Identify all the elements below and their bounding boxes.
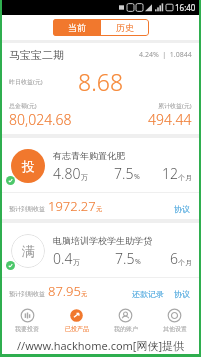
staticText: 万: [73, 258, 80, 267]
staticText: 7.5: [114, 164, 134, 183]
staticText: 6: [170, 249, 178, 268]
staticText: 昨日收益(元): [9, 78, 43, 86]
staticText: 个月: [178, 173, 192, 182]
staticText: 当前: [68, 22, 86, 33]
staticText: 协议: [174, 204, 190, 214]
button[interactable]: 还款记录: [130, 288, 166, 300]
staticText: 494.44: [148, 110, 192, 129]
staticText: 累计收益(元): [158, 102, 192, 110]
button[interactable]: 满: [2, 223, 199, 304]
staticText: 7.5: [115, 249, 135, 268]
staticText: 4.80: [53, 164, 81, 183]
staticText: 协议: [174, 289, 190, 299]
staticText: 元: [96, 205, 102, 213]
staticText: 电脑培训学校学生助学贷: [53, 235, 152, 246]
staticText: 4.24% | 1.0844: [139, 50, 192, 60]
button[interactable]: 已投产品: [52, 304, 101, 336]
staticText: 8.68: [78, 66, 124, 97]
button[interactable]: 协议: [172, 288, 192, 300]
button[interactable]: 我要投资: [2, 304, 52, 336]
staticText: 预计到期收益: [9, 205, 45, 213]
staticText: %: [135, 257, 141, 267]
staticText: 80,024.68: [9, 110, 72, 129]
staticText: 预计到期收益: [9, 290, 45, 298]
staticText: 万: [81, 173, 88, 182]
staticText: 总金额(元): [9, 102, 37, 110]
staticText: 投: [22, 158, 35, 174]
button[interactable]: 其他设置: [150, 304, 199, 336]
staticText: 12: [162, 164, 178, 183]
button[interactable]: 协议: [172, 203, 192, 215]
staticText: 我要投资: [15, 325, 39, 333]
staticText: 1972.27: [48, 197, 96, 215]
button[interactable]: 我的账户: [101, 304, 150, 336]
staticText: 我的账户: [114, 325, 138, 333]
staticText: 历史: [116, 22, 134, 33]
staticText: 马宝宝二期: [9, 48, 64, 62]
staticText: 16:40: [175, 2, 196, 13]
staticText: 0.4: [53, 249, 73, 268]
staticText: 有志青年购置化肥: [53, 150, 125, 161]
staticText: 其他设置: [163, 325, 187, 333]
staticText: 87.95: [48, 282, 81, 300]
button[interactable]: 当前: [53, 19, 101, 36]
staticText: 满: [22, 243, 35, 259]
staticText: 还款记录: [132, 289, 164, 299]
button[interactable]: 投: [2, 138, 199, 219]
button[interactable]: 马宝宝二期: [2, 43, 199, 134]
staticText: //www.hackhome.com[网侠]提供: [17, 338, 185, 353]
button[interactable]: 历史: [101, 19, 149, 36]
staticText: 已投产品: [65, 325, 89, 333]
staticText: 个月: [178, 258, 192, 267]
staticText: %: [134, 172, 140, 182]
staticText: 元: [81, 290, 87, 298]
